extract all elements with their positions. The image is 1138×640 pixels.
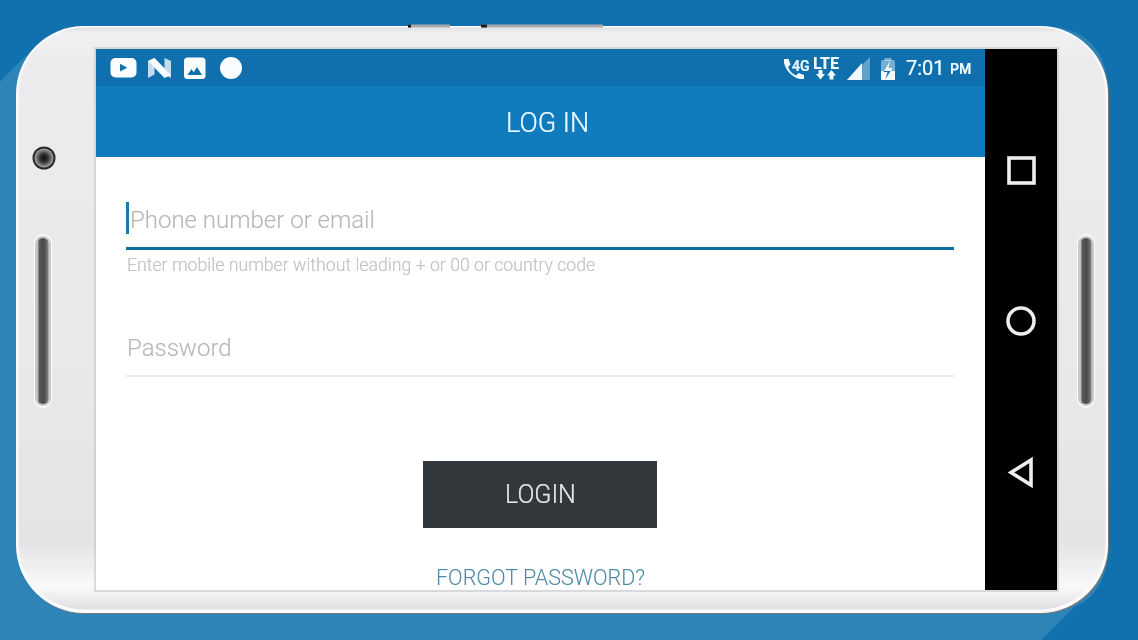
button[interactable]: Back: [985, 436, 1057, 508]
button[interactable]: Home: [985, 285, 1057, 357]
staticText: Password: [127, 334, 232, 362]
staticText: Enter mobile number without leading + or…: [127, 255, 596, 276]
button[interactable]: Password: [126, 329, 954, 377]
staticText: FORGOT PASSWORD?: [436, 565, 645, 590]
staticText: LOGIN: [505, 480, 576, 509]
button[interactable]: Recent apps: [985, 134, 1057, 206]
staticText: Phone number or email: [130, 206, 375, 234]
staticText: 7:01: [906, 56, 945, 79]
staticText: LOG IN: [506, 107, 590, 139]
staticText: 4G: [792, 58, 810, 74]
button[interactable]: Phone number or email: [126, 187, 954, 250]
staticText: LTE: [813, 54, 839, 73]
button[interactable]: FORGOT PASSWORD?: [430, 557, 650, 597]
button[interactable]: LOGIN: [423, 461, 657, 528]
staticText: PM: [950, 61, 972, 77]
